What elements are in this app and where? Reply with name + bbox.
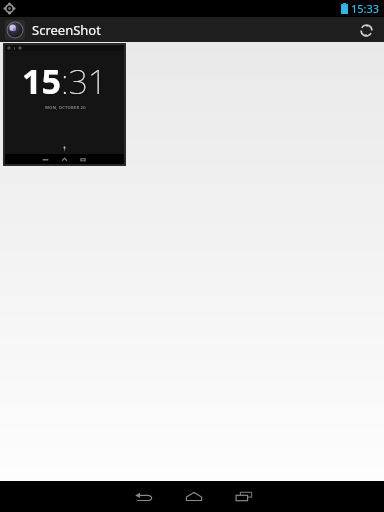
button[interactable]: Recent apps <box>219 481 269 512</box>
staticText: 15:33 <box>351 1 380 16</box>
button[interactable]: Home <box>169 481 219 512</box>
staticText: :31 <box>61 58 108 104</box>
staticText: 15 <box>22 58 61 104</box>
button[interactable]: ScreenShot app icon <box>5 20 25 40</box>
button[interactable]: Refresh <box>354 18 378 42</box>
staticText: MON, OCTOBER 20 <box>45 105 86 110</box>
staticText: ScreenShot <box>32 21 101 39</box>
button[interactable]: Back <box>119 481 169 512</box>
button[interactable]: Screenshot thumbnail 15:31 <box>3 43 126 166</box>
